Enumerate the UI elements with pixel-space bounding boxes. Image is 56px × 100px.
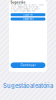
staticText: Opção dois (22, 18, 33, 20)
staticText: Continuar (20, 63, 35, 67)
button[interactable]: Continuar (11, 62, 45, 68)
staticText: ctetur adipiscing elit sed do eius (11, 6, 39, 8)
staticText: Opção um (23, 13, 33, 16)
staticText: Sugestão aleatória (3, 82, 53, 89)
button[interactable]: Opção um (11, 13, 45, 16)
staticText: Lorem ipsum dolor sit amet, conse (11, 4, 44, 6)
staticText: mod tempor incididunt ut labore (11, 8, 40, 10)
staticText: Sugestão (11, 1, 26, 4)
staticText: et dolore magna aliqua enim. (11, 10, 37, 12)
button[interactable]: Opção dois (11, 17, 45, 20)
